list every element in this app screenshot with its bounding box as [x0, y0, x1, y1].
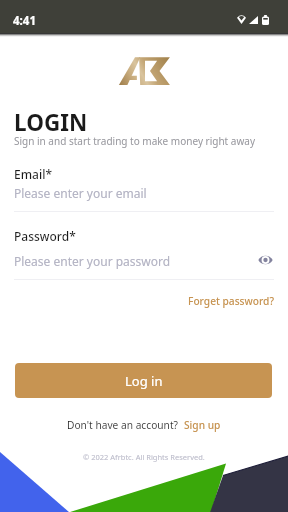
- staticText: Please enter your password: [14, 253, 171, 269]
- button[interactable]: Show password: [255, 250, 275, 270]
- staticText: LOGIN: [14, 107, 88, 138]
- staticText: Password*: [14, 228, 76, 244]
- staticText: Log in: [125, 372, 163, 390]
- staticText: Email*: [14, 166, 52, 182]
- staticText: 4:41: [13, 13, 36, 29]
- button[interactable]: Forget password?: [188, 294, 274, 308]
- staticText: © 2022 Afrbtc. All Rights Reserved.: [83, 452, 205, 462]
- staticText: Sign in and start trading to make money …: [14, 134, 256, 148]
- button[interactable]: Sign up: [184, 418, 221, 432]
- staticText: Don't have an account?: [67, 418, 184, 432]
- button[interactable]: Log in: [15, 363, 272, 398]
- staticText: Please enter your email: [14, 185, 147, 201]
